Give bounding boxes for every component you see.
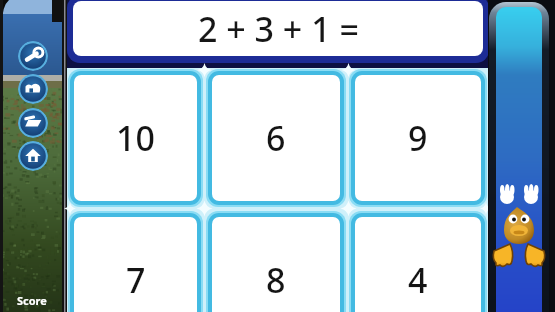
staticText: 4 xyxy=(408,257,428,303)
button[interactable]: 9 xyxy=(349,69,487,207)
staticText: 9 xyxy=(408,115,428,161)
button[interactable]: 8 xyxy=(206,211,346,312)
staticText: 2 + 3 + 1 = xyxy=(198,6,359,52)
staticText: Score xyxy=(17,293,47,308)
staticText: 10 xyxy=(116,115,155,161)
button[interactable] xyxy=(18,108,48,138)
button[interactable]: 4 xyxy=(349,211,487,312)
button[interactable] xyxy=(18,74,48,104)
button[interactable]: 10 xyxy=(68,69,203,207)
button[interactable]: 6 xyxy=(206,69,346,207)
button[interactable] xyxy=(18,141,48,171)
staticText: 6 xyxy=(266,115,286,161)
staticText: 7 xyxy=(126,257,146,303)
staticText: 8 xyxy=(266,257,286,303)
button[interactable] xyxy=(18,41,48,71)
button[interactable]: 7 xyxy=(68,211,203,312)
